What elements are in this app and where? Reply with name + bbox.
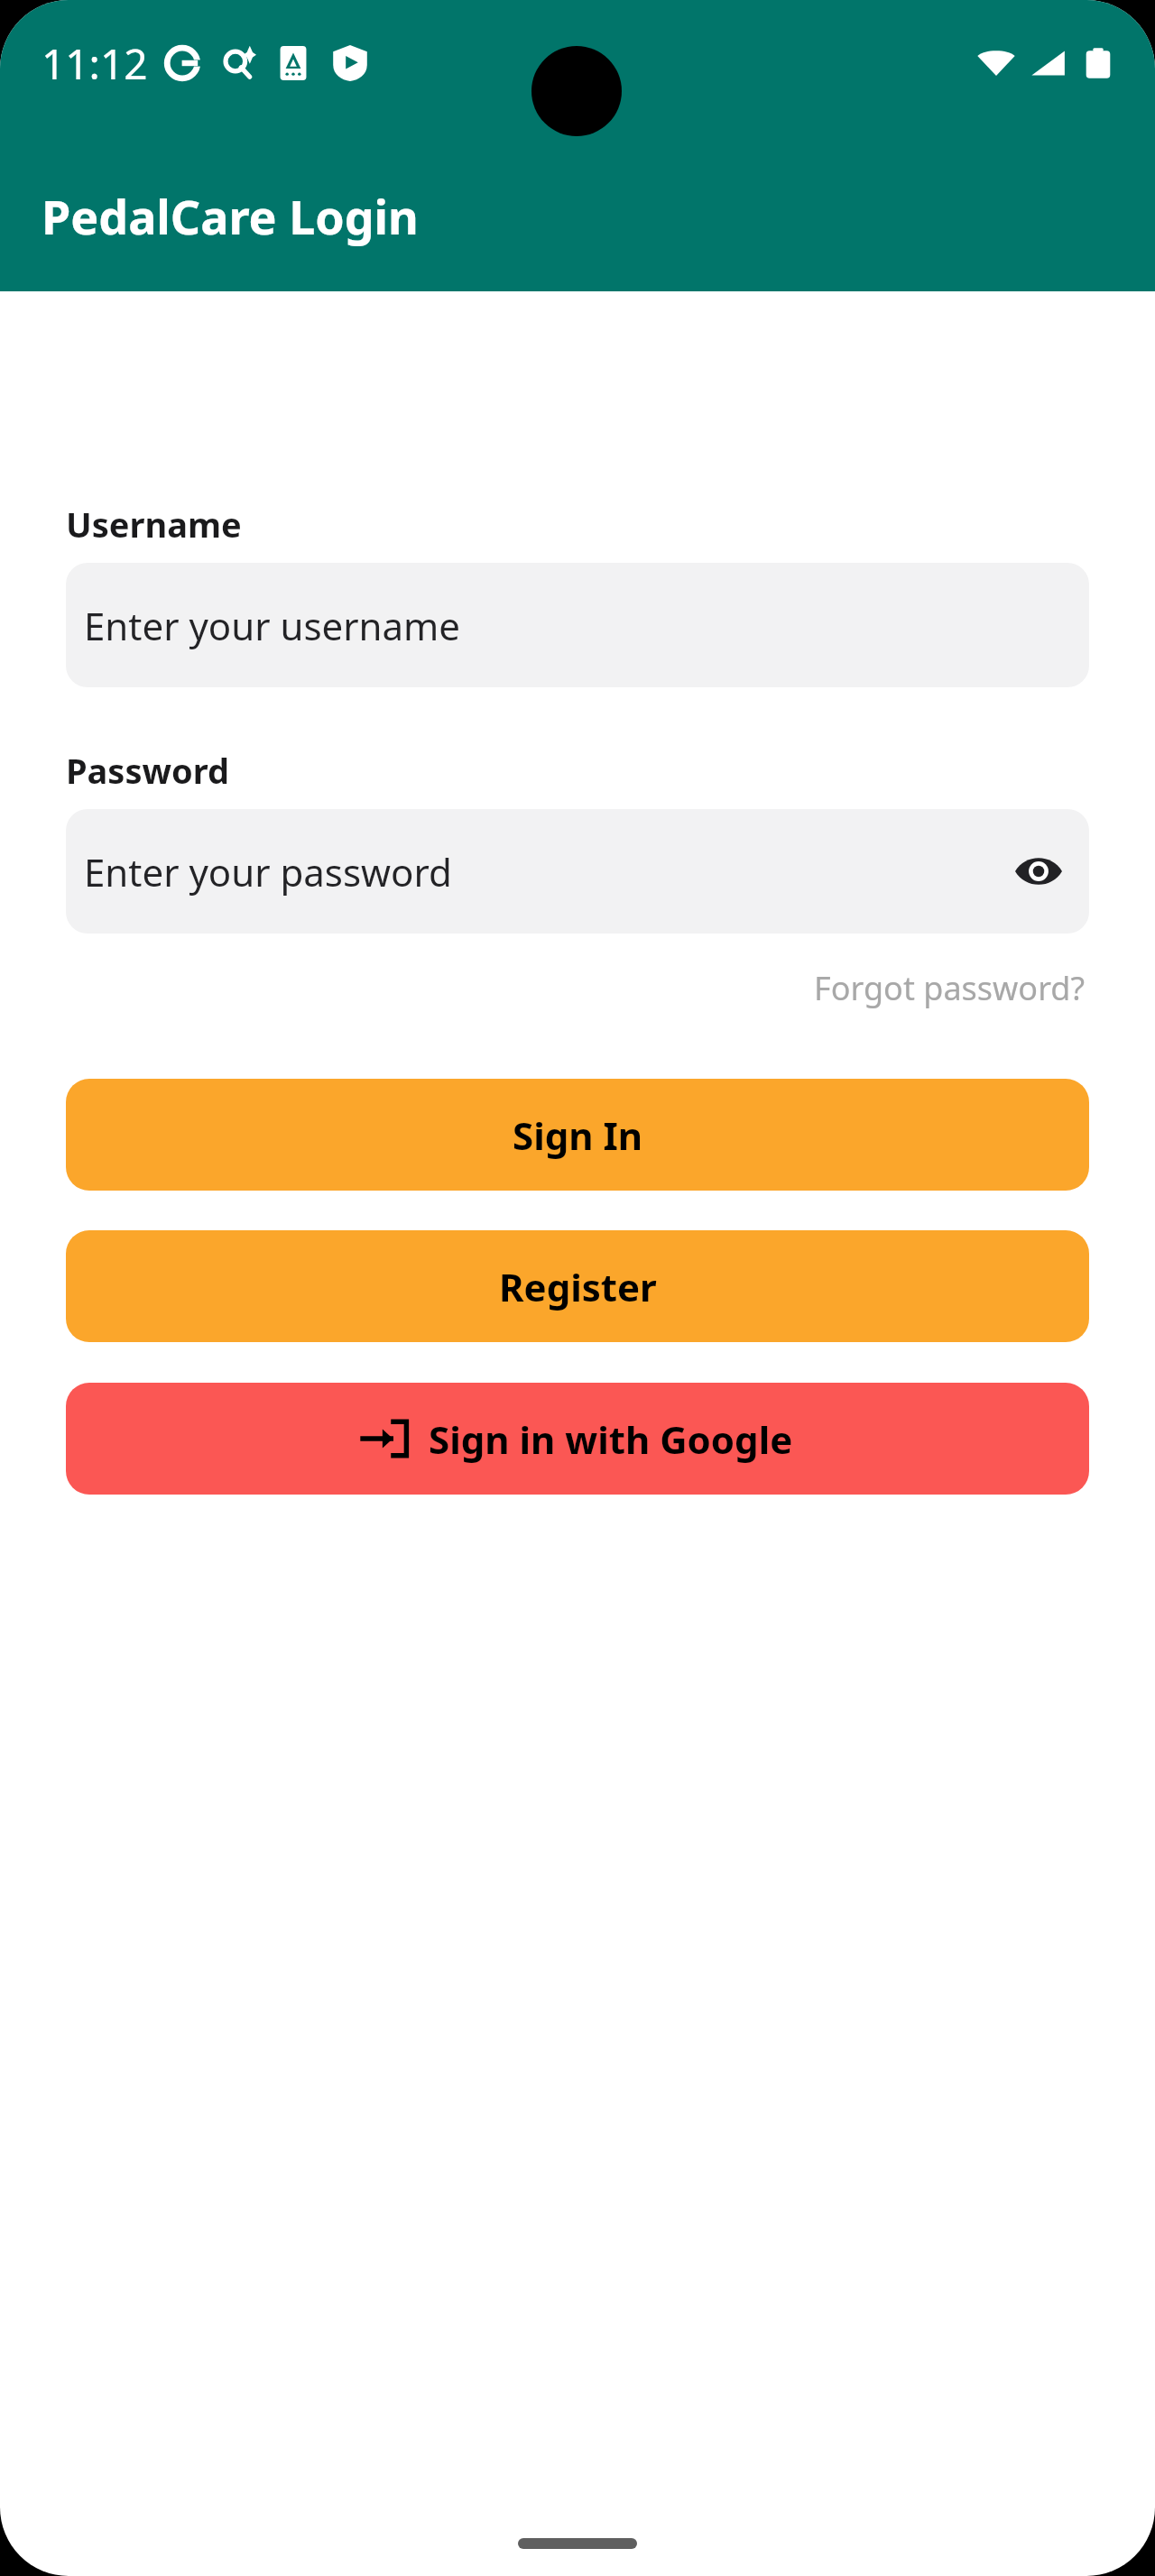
button[interactable]: Sign in with Google bbox=[66, 1383, 1089, 1495]
staticText: Enter your password bbox=[84, 846, 452, 897]
staticText: Sign in with Google bbox=[429, 1413, 793, 1465]
button[interactable]: Register bbox=[66, 1230, 1089, 1342]
button[interactable]: Show password bbox=[1006, 839, 1071, 904]
staticText: PedalCare Login bbox=[42, 184, 419, 248]
button[interactable]: Forgot password? bbox=[810, 962, 1089, 1014]
staticText: Sign In bbox=[513, 1109, 643, 1161]
staticText: Username bbox=[66, 501, 242, 547]
staticText: Password bbox=[66, 747, 230, 794]
staticText: Register bbox=[499, 1261, 657, 1312]
button[interactable]: Enter your password bbox=[66, 809, 1089, 934]
staticText: Enter your username bbox=[84, 600, 461, 651]
button[interactable]: Enter your username bbox=[66, 563, 1089, 687]
button[interactable]: Sign In bbox=[66, 1079, 1089, 1191]
staticText: 11:12 bbox=[42, 35, 148, 92]
